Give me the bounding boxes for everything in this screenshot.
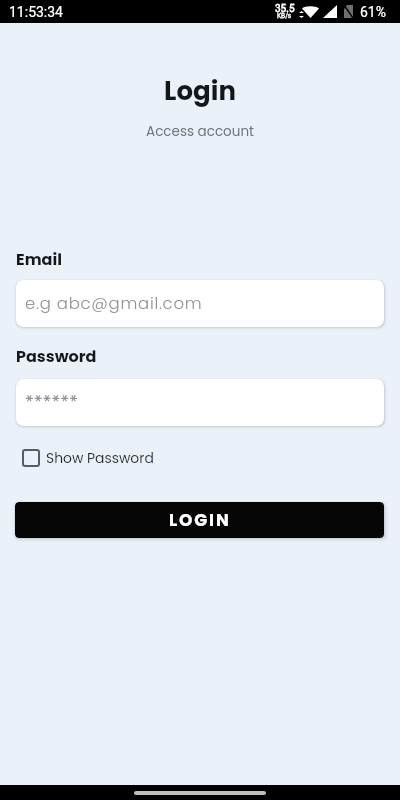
button[interactable]: e.g abc@gmail.com [16,280,384,327]
button[interactable]: Show Password [16,441,160,474]
staticText: 11:53:34 [9,4,63,20]
other: Signal [323,5,337,18]
staticText: LOGIN [169,508,231,532]
other: Wi-Fi [302,5,319,18]
staticText: KB/s [277,12,292,20]
button[interactable]: LOGIN [15,502,384,538]
staticText: Password [16,345,97,367]
staticText: 35.5 [275,3,295,15]
staticText: Email [16,248,62,270]
staticText: Show Password [46,448,154,467]
other: No SIM [344,5,353,18]
staticText: Login [0,73,400,109]
staticText: e.g abc@gmail.com [25,292,203,315]
button[interactable]: Password input [16,379,384,426]
staticText: Access account [0,122,400,141]
staticText: 61% [360,4,386,20]
